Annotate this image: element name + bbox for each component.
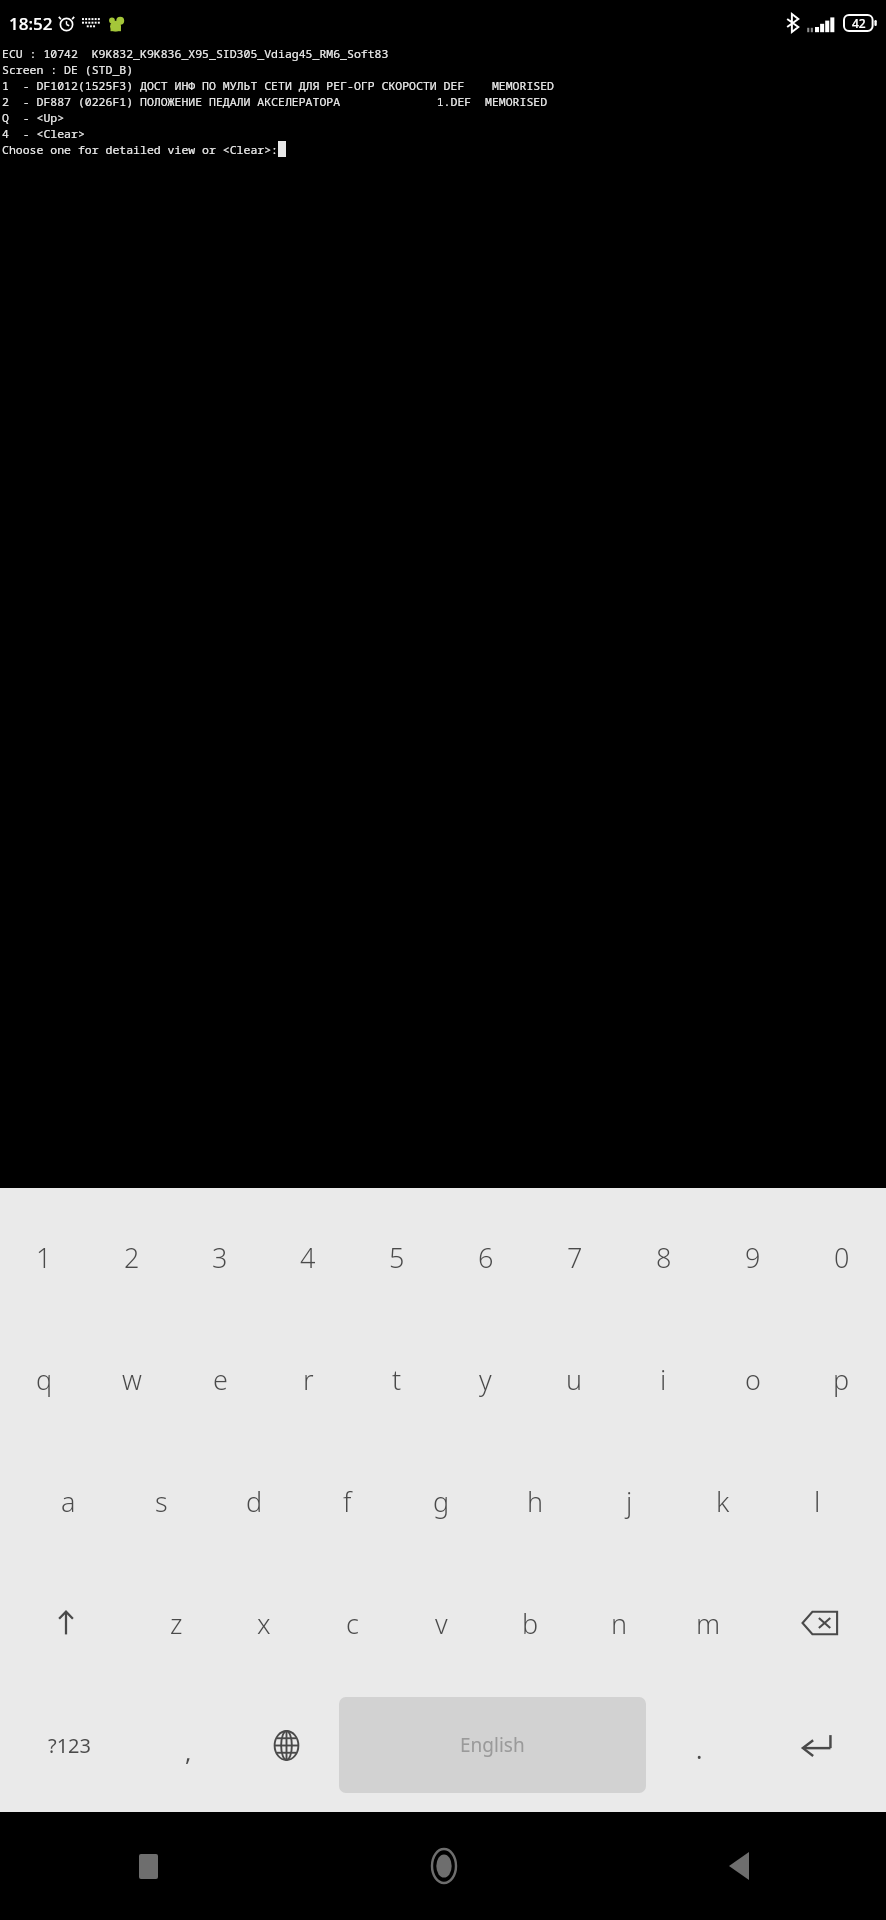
- staticText: e: [213, 1361, 228, 1398]
- staticText: 4 - <Clear>: [2, 126, 85, 142]
- button[interactable]: u: [530, 1318, 619, 1440]
- staticText: q: [36, 1361, 53, 1398]
- button[interactable]: v: [397, 1562, 486, 1684]
- staticText: 3: [212, 1239, 228, 1276]
- staticText: 6: [478, 1239, 494, 1276]
- staticText: 5: [389, 1239, 405, 1276]
- staticText: ECU : 10742 K9K832_K9K836_X95_SID305_Vdi…: [2, 46, 389, 62]
- button[interactable]: i: [619, 1318, 708, 1440]
- staticText: ,: [185, 1735, 192, 1768]
- button[interactable]: c: [308, 1562, 397, 1684]
- staticText: a: [61, 1483, 76, 1520]
- button[interactable]: Shift: [0, 1562, 132, 1684]
- button[interactable]: 5: [352, 1196, 441, 1318]
- staticText: f: [343, 1483, 352, 1520]
- button[interactable]: y: [441, 1318, 530, 1440]
- staticText: k: [716, 1483, 730, 1520]
- button[interactable]: q: [0, 1318, 88, 1440]
- button[interactable]: ,: [139, 1684, 237, 1806]
- staticText: v: [435, 1605, 448, 1642]
- staticText: n: [611, 1605, 628, 1642]
- staticText: z: [170, 1605, 183, 1642]
- staticText: Screen : DE (STD_B): [2, 62, 134, 78]
- button[interactable]: 9: [708, 1196, 797, 1318]
- button[interactable]: s: [115, 1440, 208, 1562]
- button[interactable]: Recent apps: [0, 1812, 296, 1920]
- button[interactable]: n: [575, 1562, 664, 1684]
- button[interactable]: Backspace: [753, 1562, 886, 1684]
- button[interactable]: 8: [619, 1196, 708, 1318]
- staticText: s: [155, 1483, 168, 1520]
- button[interactable]: z: [132, 1562, 220, 1684]
- button[interactable]: j: [582, 1440, 676, 1562]
- staticText: l: [814, 1483, 821, 1520]
- button[interactable]: d: [208, 1440, 301, 1562]
- staticText: Q - <Up>: [2, 110, 65, 126]
- staticText: 42: [852, 15, 866, 31]
- button[interactable]: f: [301, 1440, 394, 1562]
- button[interactable]: 3: [176, 1196, 264, 1318]
- staticText: g: [433, 1483, 450, 1520]
- staticText: 9: [745, 1239, 761, 1276]
- staticText: h: [527, 1483, 544, 1520]
- staticText: w: [122, 1361, 142, 1398]
- button[interactable]: w: [88, 1318, 176, 1440]
- staticText: 18:52: [9, 12, 53, 35]
- staticText: t: [392, 1361, 402, 1398]
- button[interactable]: p: [797, 1318, 886, 1440]
- staticText: English: [460, 1732, 525, 1758]
- button[interactable]: g: [394, 1440, 488, 1562]
- button[interactable]: 2: [88, 1196, 176, 1318]
- staticText: .: [696, 1733, 703, 1766]
- staticText: 4: [300, 1239, 316, 1276]
- button[interactable]: Home: [296, 1812, 591, 1920]
- staticText: m: [696, 1605, 721, 1642]
- staticText: 1 - DF1012(1525F3) ДОСТ ИНФ ПО МУЛЬТ СЕТ…: [2, 78, 554, 94]
- staticText: o: [745, 1361, 761, 1398]
- button[interactable]: ?123: [0, 1684, 139, 1806]
- staticText: 7: [567, 1239, 583, 1276]
- staticText: 2: [124, 1239, 140, 1276]
- staticText: 0: [834, 1239, 850, 1276]
- button[interactable]: 4: [264, 1196, 352, 1318]
- button[interactable]: 1: [0, 1196, 88, 1318]
- staticText: x: [257, 1605, 271, 1642]
- button[interactable]: 0: [797, 1196, 886, 1318]
- button[interactable]: .: [650, 1684, 748, 1806]
- button[interactable]: m: [664, 1562, 753, 1684]
- staticText: b: [522, 1605, 539, 1642]
- button[interactable]: English: [339, 1697, 646, 1793]
- button[interactable]: t: [352, 1318, 441, 1440]
- button[interactable]: Back: [591, 1812, 886, 1920]
- staticText: y: [479, 1361, 492, 1398]
- staticText: 8: [656, 1239, 672, 1276]
- staticText: u: [566, 1361, 583, 1398]
- staticText: i: [660, 1361, 667, 1398]
- staticText: j: [626, 1483, 633, 1520]
- staticText: 1: [36, 1239, 52, 1276]
- button[interactable]: Enter: [748, 1684, 886, 1806]
- button[interactable]: k: [676, 1440, 770, 1562]
- staticText: p: [833, 1361, 850, 1398]
- button[interactable]: 7: [530, 1196, 619, 1318]
- staticText: c: [346, 1605, 359, 1642]
- button[interactable]: e: [176, 1318, 264, 1440]
- staticText: Choose one for detailed view or <Clear>:: [2, 142, 278, 158]
- button[interactable]: b: [486, 1562, 575, 1684]
- button[interactable]: a: [22, 1440, 115, 1562]
- staticText: d: [246, 1483, 263, 1520]
- button[interactable]: r: [264, 1318, 352, 1440]
- staticText: ?123: [48, 1732, 91, 1759]
- staticText: r: [303, 1361, 314, 1398]
- button[interactable]: x: [220, 1562, 308, 1684]
- staticText: 2 - DF887 (0226F1) ПОЛОЖЕНИЕ ПЕДАЛИ АКСЕ…: [2, 94, 548, 110]
- button[interactable]: l: [770, 1440, 864, 1562]
- button[interactable]: o: [708, 1318, 797, 1440]
- button[interactable]: 6: [441, 1196, 530, 1318]
- button[interactable]: h: [488, 1440, 582, 1562]
- button[interactable]: Change language: [237, 1684, 335, 1806]
